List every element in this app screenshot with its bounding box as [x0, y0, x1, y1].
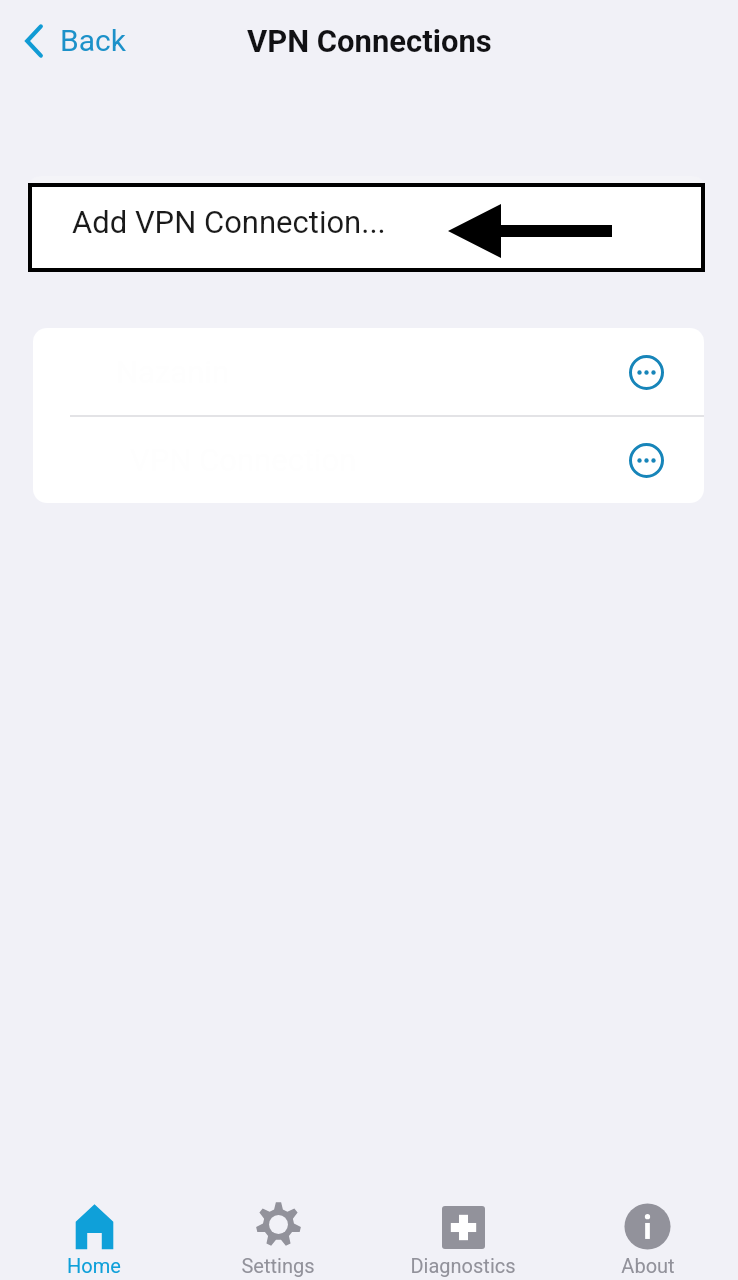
button[interactable]: More options [620, 434, 672, 486]
button[interactable]: Nazanin [33, 328, 704, 415]
button[interactable]: Diagnostics [370, 1184, 555, 1280]
staticText: Add VPN Connection... [72, 204, 386, 240]
staticText: Back [60, 23, 126, 58]
staticText: About [621, 1254, 675, 1277]
button[interactable]: About [555, 1184, 738, 1280]
button[interactable]: More options [620, 346, 672, 398]
button[interactable]: Add VPN Connection... [28, 183, 705, 272]
button[interactable]: Back [21, 19, 130, 62]
staticText: Diagnostics [410, 1254, 516, 1277]
button[interactable]: Settings [186, 1184, 370, 1280]
button[interactable]: Home [2, 1184, 186, 1280]
staticText: Settings [241, 1254, 315, 1277]
staticText: VPN Connections [247, 23, 492, 59]
button[interactable]: VPN Connection [33, 417, 704, 503]
staticText: Home [67, 1254, 121, 1277]
